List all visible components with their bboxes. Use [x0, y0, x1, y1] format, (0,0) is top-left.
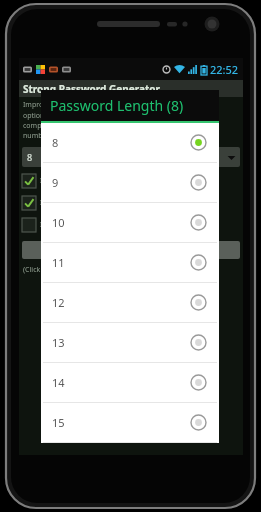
- button[interactable]: Include upper case letters: [22, 195, 240, 211]
- staticText: Improve your online security by choosing…: [23, 100, 172, 140]
- button[interactable]: 13: [41, 323, 219, 362]
- staticText: Include upper case letters: [40, 198, 126, 208]
- button[interactable]: 12: [41, 283, 219, 322]
- staticText: Include lower case letters: [40, 176, 124, 186]
- staticText: 13: [52, 335, 190, 350]
- button[interactable]: 11: [41, 243, 219, 282]
- button[interactable]: Include lower case letters: [22, 173, 240, 189]
- button[interactable]: 8: [22, 147, 240, 167]
- staticText: 9: [52, 175, 190, 190]
- staticText: Password Length (8): [50, 96, 184, 115]
- staticText: 10: [52, 215, 190, 230]
- button[interactable]: Include numbers: [22, 217, 240, 233]
- staticText: 14: [52, 375, 190, 390]
- staticText: 12: [52, 295, 190, 310]
- staticText: 22:52: [210, 62, 239, 77]
- button[interactable]: 10: [41, 203, 219, 242]
- button[interactable]: Generate Password: [22, 241, 240, 259]
- button[interactable]: Strong Password Generator: [19, 80, 243, 97]
- staticText: Strong Password Generator: [23, 82, 161, 96]
- staticText: 8: [52, 135, 190, 150]
- button[interactable]: 8: [41, 123, 219, 162]
- button[interactable]: 9: [41, 163, 219, 202]
- button[interactable]: 14: [41, 363, 219, 402]
- staticText: (Click to copy): [23, 265, 69, 275]
- staticText: 11: [52, 255, 190, 270]
- staticText: 15: [52, 415, 190, 430]
- button[interactable]: 15: [41, 403, 219, 442]
- staticText: Include numbers: [40, 220, 96, 230]
- staticText: 8: [27, 151, 226, 163]
